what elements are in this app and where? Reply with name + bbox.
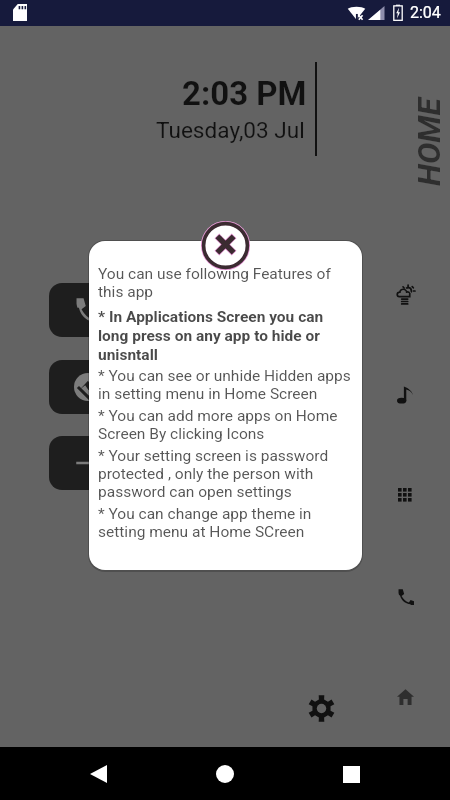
staticText: long press on any app to hide or (98, 327, 320, 345)
staticText: * In Applications Screen you can (98, 308, 324, 326)
staticText: Tuesday,03 Jul (156, 117, 305, 143)
button[interactable]: Back (74, 750, 123, 798)
button[interactable]: Music (388, 377, 422, 414)
staticText: You can use following Features of (98, 265, 331, 283)
staticText: setting menu at Home SCreen (98, 523, 305, 541)
button[interactable]: Phone app (49, 283, 126, 337)
staticText: Screen By clicking Icons (98, 425, 265, 443)
staticText: 2:04 (410, 3, 441, 22)
button[interactable]: Recents (327, 750, 376, 798)
button[interactable]: Home (200, 750, 249, 798)
staticText: in setting menu in Home Screen (98, 385, 318, 403)
button[interactable]: Apps (389, 479, 422, 512)
staticText: * You can add more apps on Home (98, 407, 338, 425)
staticText: unisntall (98, 346, 158, 364)
staticText: this app (98, 283, 154, 301)
button[interactable]: Phone (388, 579, 423, 614)
button[interactable]: Settings (308, 695, 335, 722)
staticText: * You can see or unhide Hidden apps (98, 367, 351, 385)
staticText: password can open settings (98, 483, 292, 501)
button[interactable]: Messages app (49, 360, 126, 414)
staticText: protected , only the person with (98, 465, 314, 483)
staticText: HOME (410, 98, 448, 186)
button[interactable]: Home (388, 680, 423, 714)
staticText: 2:03 PM (182, 74, 307, 113)
button[interactable]: Weather (386, 276, 424, 314)
button[interactable]: Close (201, 221, 250, 270)
staticText: * You can change app theme in (98, 505, 312, 523)
staticText: * Your setting screen is password (98, 447, 329, 465)
button[interactable]: App (49, 436, 126, 490)
